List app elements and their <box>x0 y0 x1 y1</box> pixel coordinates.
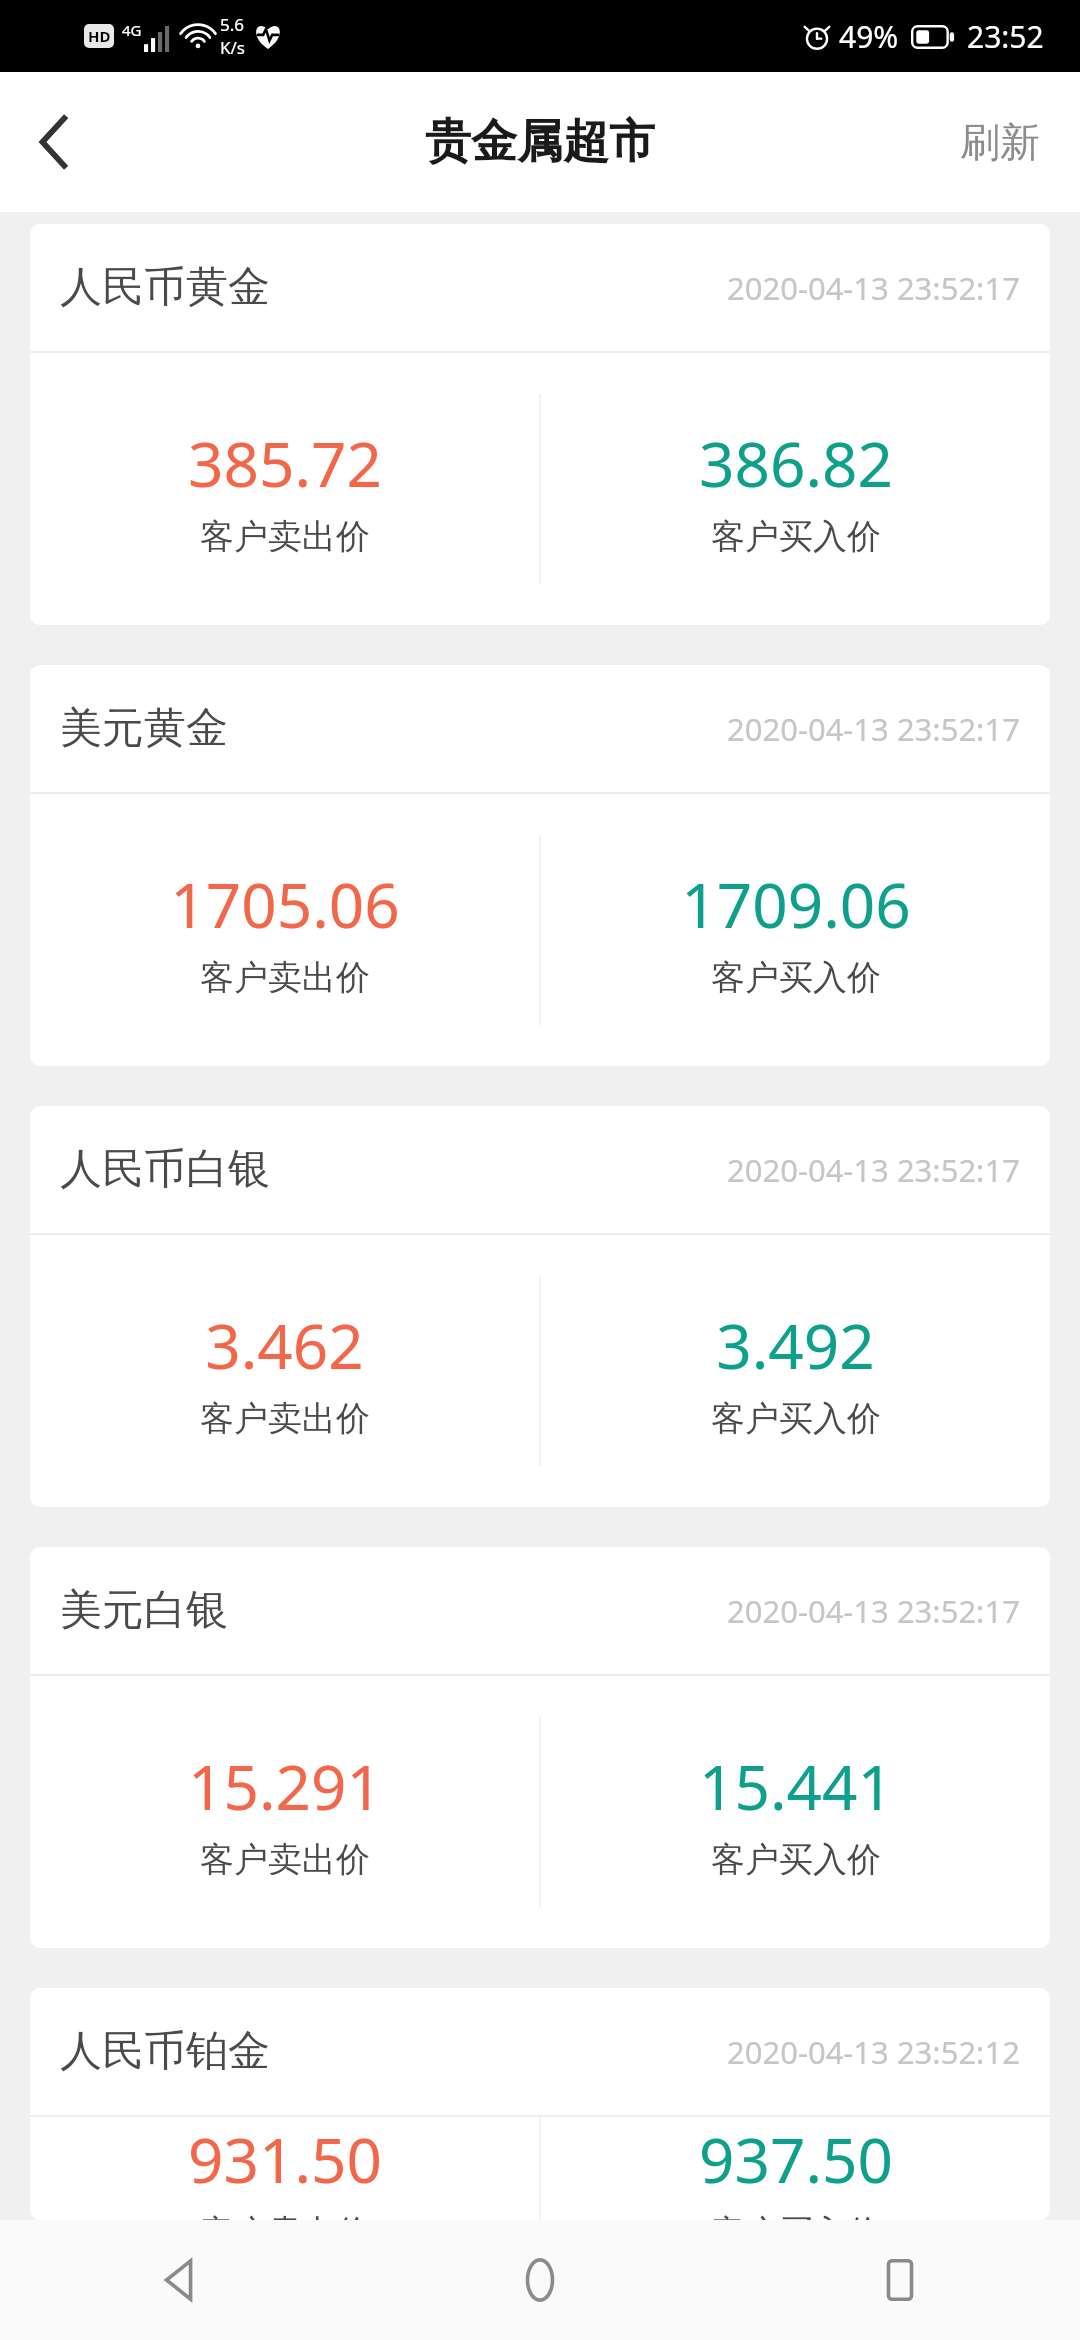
button[interactable]: Back <box>0 72 108 212</box>
staticText: 美元白银 <box>60 1584 228 1637</box>
staticText: 3.462 <box>205 1303 364 1387</box>
staticText: 386.82 <box>699 421 893 505</box>
staticText: 人民币黄金 <box>60 261 270 314</box>
staticText: 客户卖出价 <box>200 956 370 999</box>
button[interactable]: Recent apps <box>720 2220 1080 2340</box>
staticText: 15.441 <box>699 1744 893 1828</box>
button[interactable]: 人民币黄金 <box>30 224 1050 625</box>
button[interactable]: Back <box>0 2220 360 2340</box>
button[interactable]: 人民币白银 <box>30 1106 1050 1507</box>
staticText: 客户卖出价 <box>200 1838 370 1881</box>
staticText: 美元黄金 <box>60 702 228 755</box>
staticText: 人民币白银 <box>60 1143 270 1196</box>
staticText: 1709.06 <box>681 862 911 946</box>
staticText: K/s <box>220 36 245 59</box>
staticText: 贵金属超市 <box>425 113 655 171</box>
staticText: 2020-04-13 23:52:12 <box>727 2031 1020 2073</box>
button[interactable]: Home <box>360 2220 720 2340</box>
staticText: 2020-04-13 23:52:17 <box>727 1149 1020 1191</box>
staticText: 4G <box>122 20 142 40</box>
staticText: 5.6 <box>220 13 245 36</box>
staticText: 1705.06 <box>170 862 400 946</box>
button[interactable]: 美元黄金 <box>30 665 1050 1066</box>
staticText: 931.50 <box>188 2117 382 2201</box>
staticText: 3.492 <box>716 1303 875 1387</box>
button[interactable]: 刷新 <box>920 72 1080 212</box>
staticText: 人民币铂金 <box>60 2025 270 2078</box>
staticText: 937.50 <box>699 2117 893 2201</box>
staticText: 客户卖出价 <box>200 515 370 558</box>
staticText: 客户卖出价 <box>200 1397 370 1440</box>
staticText: 49% <box>839 16 899 57</box>
staticText: 客户买入价 <box>711 1838 881 1881</box>
staticText: HD <box>88 26 111 46</box>
button[interactable]: 人民币铂金 <box>30 1988 1050 2220</box>
staticText: 刷新 <box>960 117 1040 167</box>
staticText: 2020-04-13 23:52:17 <box>727 708 1020 750</box>
staticText: 客户卖出价 <box>200 2211 370 2220</box>
staticText: 385.72 <box>188 421 382 505</box>
staticText: 2020-04-13 23:52:17 <box>727 267 1020 309</box>
staticText: 2020-04-13 23:52:17 <box>727 1590 1020 1632</box>
staticText: 客户买入价 <box>711 515 881 558</box>
staticText: 23:52 <box>967 16 1044 57</box>
button[interactable]: 美元白银 <box>30 1547 1050 1948</box>
staticText: 15.291 <box>188 1744 382 1828</box>
staticText: 客户买入价 <box>711 1397 881 1440</box>
staticText: 客户买入价 <box>711 2211 881 2220</box>
staticText: 客户买入价 <box>711 956 881 999</box>
